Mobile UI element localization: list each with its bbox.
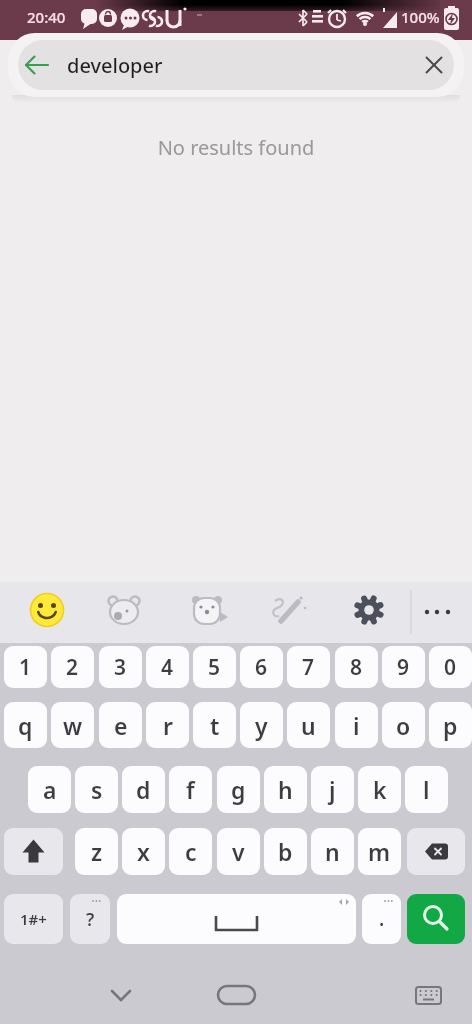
- button[interactable]: z: [75, 828, 118, 875]
- button[interactable]: .: [362, 894, 401, 944]
- staticText: 5: [208, 653, 221, 682]
- staticText: a: [43, 774, 57, 805]
- button[interactable]: 6: [240, 646, 283, 688]
- staticText: 3: [114, 653, 127, 682]
- button[interactable]: m: [358, 828, 401, 875]
- staticText: i: [353, 710, 360, 741]
- button[interactable]: 4: [146, 646, 189, 688]
- staticText: 0: [444, 653, 457, 682]
- staticText: No results found: [0, 134, 472, 161]
- staticText: q: [18, 710, 33, 741]
- button[interactable]: [348, 589, 390, 631]
- button[interactable]: 7: [287, 646, 330, 688]
- staticText: k: [373, 774, 387, 805]
- button[interactable]: b: [264, 828, 307, 875]
- button[interactable]: 1#+: [4, 894, 63, 944]
- button[interactable]: q: [4, 702, 47, 748]
- button[interactable]: [186, 589, 228, 631]
- button[interactable]: [102, 976, 142, 1012]
- button[interactable]: y: [240, 702, 283, 748]
- staticText: j: [329, 774, 336, 805]
- button[interactable]: d: [122, 766, 165, 813]
- button[interactable]: c: [169, 828, 212, 875]
- staticText: n: [325, 836, 340, 867]
- staticText: u: [301, 710, 316, 741]
- staticText: b: [278, 836, 293, 867]
- staticText: 6: [255, 653, 268, 682]
- staticText: d: [136, 774, 151, 805]
- button[interactable]: p: [429, 702, 472, 748]
- staticText: 2: [66, 653, 79, 682]
- staticText: 4: [161, 653, 174, 682]
- button[interactable]: k: [358, 766, 401, 813]
- staticText: z: [91, 836, 103, 867]
- button[interactable]: 1: [4, 646, 47, 688]
- button[interactable]: t: [193, 702, 236, 748]
- button[interactable]: [117, 894, 356, 944]
- staticText: l: [423, 774, 430, 805]
- staticText: f: [186, 774, 195, 805]
- staticText: v: [232, 836, 245, 867]
- button[interactable]: 0: [429, 646, 472, 688]
- button[interactable]: i: [335, 702, 378, 748]
- button[interactable]: [414, 45, 454, 85]
- button[interactable]: a: [28, 766, 71, 813]
- button[interactable]: v: [217, 828, 260, 875]
- staticText: 9: [397, 653, 410, 682]
- button[interactable]: [407, 894, 465, 944]
- staticText: y: [255, 710, 268, 741]
- staticText: r: [163, 710, 173, 741]
- button[interactable]: o: [382, 702, 425, 748]
- staticText: m: [368, 836, 391, 867]
- staticText: ?: [86, 907, 95, 932]
- staticText: 1#+: [20, 909, 47, 929]
- staticText: t: [210, 710, 220, 741]
- button[interactable]: j: [311, 766, 354, 813]
- button[interactable]: [210, 976, 262, 1012]
- staticText: o: [396, 710, 411, 741]
- button[interactable]: g: [217, 766, 260, 813]
- staticText: e: [114, 710, 128, 741]
- staticText: h: [278, 774, 293, 805]
- staticText: 8: [350, 653, 363, 682]
- staticText: 100%: [401, 7, 440, 27]
- button[interactable]: [27, 589, 69, 631]
- staticText: w: [63, 710, 83, 741]
- button[interactable]: [407, 828, 465, 875]
- button[interactable]: f: [169, 766, 212, 813]
- button[interactable]: [268, 589, 310, 631]
- staticText: p: [443, 710, 458, 741]
- button[interactable]: [408, 976, 452, 1012]
- staticText: c: [185, 836, 197, 867]
- button[interactable]: w: [51, 702, 94, 748]
- button[interactable]: e: [99, 702, 142, 748]
- button[interactable]: r: [146, 702, 189, 748]
- button[interactable]: 3: [99, 646, 142, 688]
- staticText: .: [379, 906, 385, 932]
- button[interactable]: [18, 45, 58, 85]
- staticText: 7: [302, 653, 315, 682]
- button[interactable]: [104, 589, 146, 631]
- staticText: 1: [19, 653, 32, 682]
- button[interactable]: s: [75, 766, 118, 813]
- button[interactable]: n: [311, 828, 354, 875]
- button[interactable]: h: [264, 766, 307, 813]
- button[interactable]: 2: [51, 646, 94, 688]
- staticText: x: [137, 836, 150, 867]
- staticText: g: [231, 774, 246, 805]
- staticText: 20:40: [27, 7, 66, 27]
- button[interactable]: 8: [335, 646, 378, 688]
- button[interactable]: 9: [382, 646, 425, 688]
- staticText: s: [91, 774, 103, 805]
- button[interactable]: 5: [193, 646, 236, 688]
- button[interactable]: ?: [70, 894, 110, 944]
- button[interactable]: x: [122, 828, 165, 875]
- button[interactable]: u: [287, 702, 330, 748]
- button[interactable]: l: [405, 766, 448, 813]
- staticText: developer: [67, 52, 163, 79]
- button[interactable]: [4, 828, 63, 875]
- button[interactable]: [416, 589, 458, 631]
